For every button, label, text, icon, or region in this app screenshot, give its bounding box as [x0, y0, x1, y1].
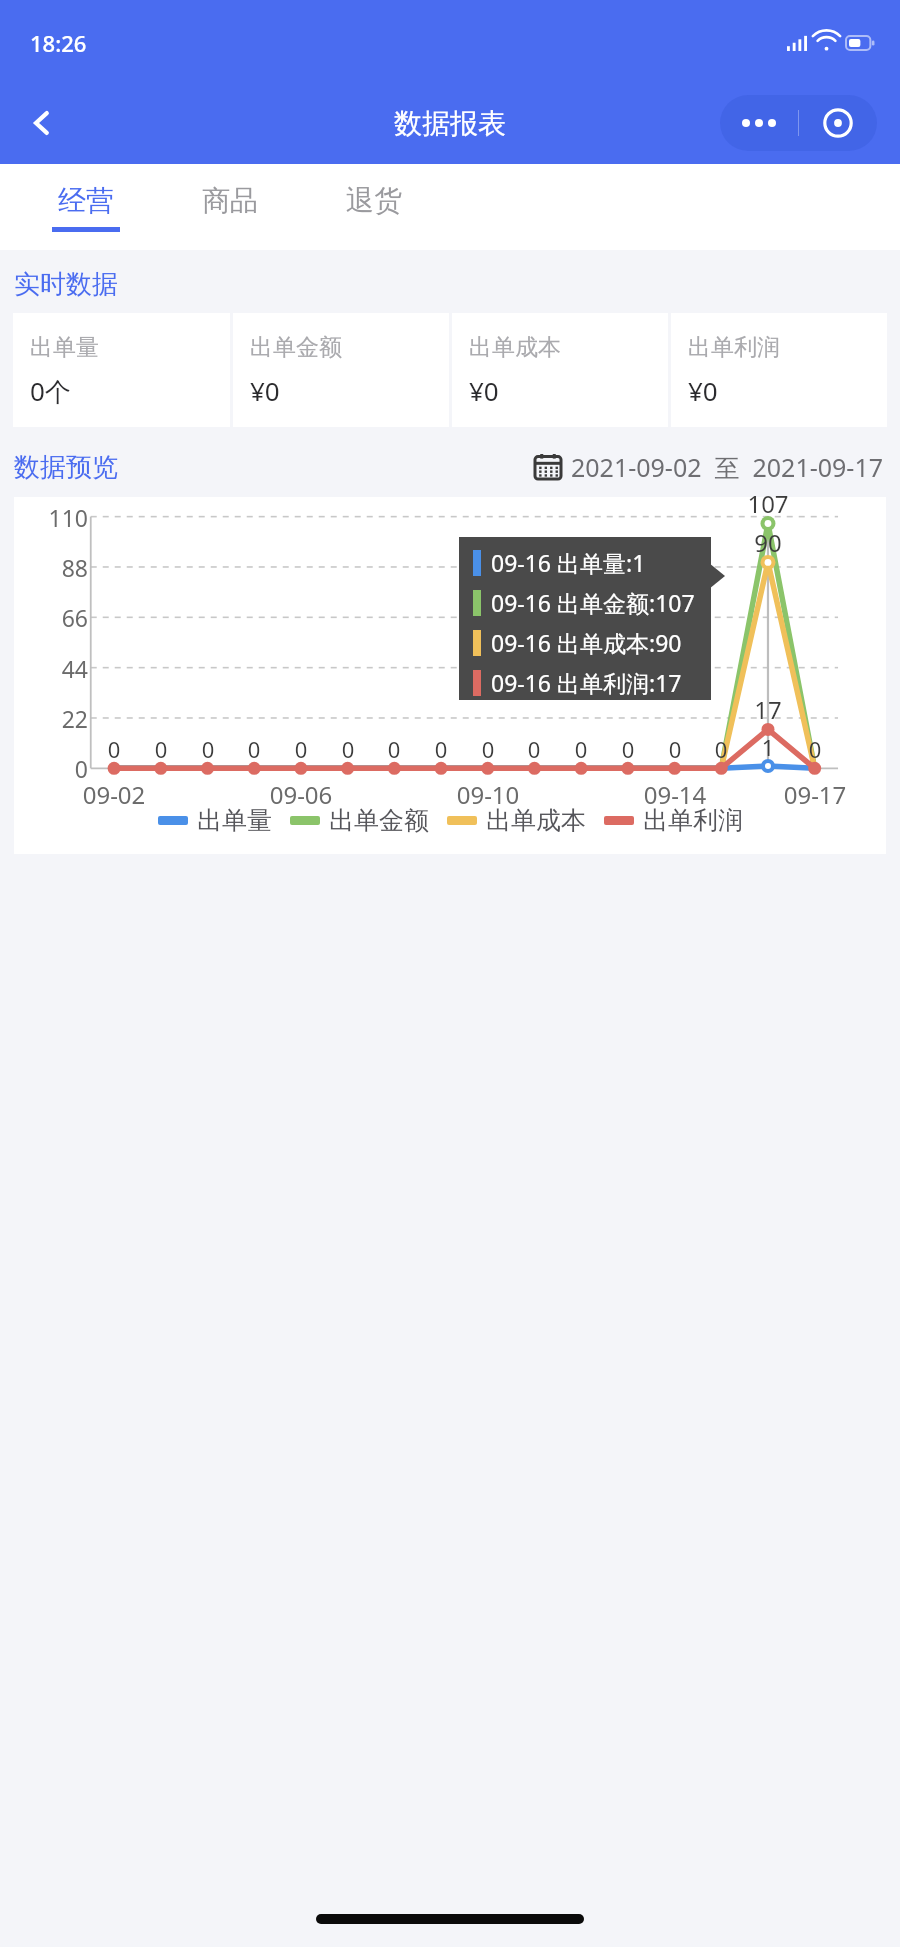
staticText: 0	[336, 734, 360, 764]
staticText: 1	[756, 732, 780, 762]
button[interactable]: 出单成本	[447, 805, 586, 836]
button[interactable]: 出单量	[158, 805, 272, 836]
staticText: 0	[569, 734, 593, 764]
staticText: 0	[616, 734, 640, 764]
staticText: 退货	[346, 183, 402, 218]
staticText: ¥0	[469, 373, 499, 408]
staticText: 0	[663, 734, 687, 764]
staticText: 0	[382, 734, 406, 764]
staticText: 0	[476, 734, 500, 764]
staticText: 0	[196, 734, 220, 764]
staticText: 0个	[30, 373, 71, 409]
staticText: 09-10	[441, 778, 535, 811]
button[interactable]: 2021-09-02 至 2021-09-17	[535, 450, 884, 484]
button[interactable]: 出单金额	[233, 313, 449, 427]
staticText: 66	[14, 602, 88, 633]
staticText: 出单成本	[486, 805, 586, 836]
staticText: ¥0	[688, 373, 718, 408]
staticText: 出单金额	[329, 805, 429, 836]
staticText: 0	[242, 734, 266, 764]
staticText: 88	[14, 552, 88, 583]
staticText: 0	[429, 734, 453, 764]
staticText: 数据报表	[394, 106, 506, 141]
staticText: 18:26	[30, 28, 87, 58]
staticText: 44	[14, 653, 88, 684]
staticText: 90	[742, 526, 794, 559]
staticText: 0	[102, 734, 126, 764]
staticText: 09-14	[628, 778, 722, 811]
staticText: 0	[803, 734, 827, 764]
button[interactable]: 商品	[158, 164, 302, 250]
staticText: 09-02	[67, 778, 161, 811]
staticText: 数据预览	[14, 451, 118, 484]
staticText: 09-17	[768, 778, 862, 811]
staticText: 0	[289, 734, 313, 764]
staticText: 2021-09-02 至 2021-09-17	[571, 450, 884, 484]
staticText: 09-16 出单利润:17	[491, 667, 682, 698]
staticText: ¥0	[250, 373, 280, 408]
staticText: 110	[14, 502, 88, 533]
button[interactable]: More	[720, 95, 798, 151]
staticText: 09-16 出单金额:107	[491, 587, 695, 618]
staticText: 出单利润	[688, 333, 780, 362]
staticText: 09-06	[254, 778, 348, 811]
staticText: 0	[522, 734, 546, 764]
staticText: 商品	[202, 183, 258, 218]
button[interactable]: 出单利润	[671, 313, 887, 427]
staticText: 09-16 出单成本:90	[491, 627, 682, 658]
staticText: 0	[709, 734, 733, 764]
staticText: 107	[736, 487, 800, 520]
staticText: 经营	[58, 183, 114, 218]
button[interactable]: 经营	[14, 164, 158, 250]
button[interactable]: 出单成本	[452, 313, 668, 427]
button[interactable]: 出单量	[13, 313, 230, 427]
staticText: 实时数据	[14, 268, 118, 301]
staticText: 09-16 出单量:1	[491, 547, 646, 578]
button[interactable]: 出单金额	[290, 805, 429, 836]
staticText: 17	[744, 693, 792, 726]
staticText: 出单量	[197, 805, 272, 836]
staticText: 出单成本	[469, 333, 561, 362]
button[interactable]: 出单利润	[604, 805, 743, 836]
button[interactable]: Back	[14, 95, 70, 151]
staticText: 0	[149, 734, 173, 764]
staticText: 0	[14, 753, 88, 784]
staticText: 出单金额	[250, 333, 342, 362]
staticText: 出单利润	[643, 805, 743, 836]
button[interactable]: 退货	[302, 164, 446, 250]
staticText: 出单量	[30, 333, 99, 362]
staticText: 22	[14, 703, 88, 734]
button[interactable]: Close	[799, 95, 877, 151]
